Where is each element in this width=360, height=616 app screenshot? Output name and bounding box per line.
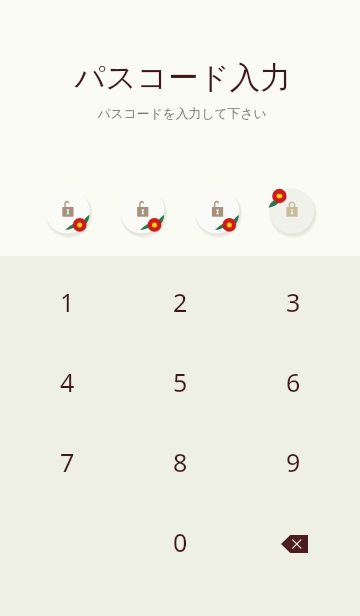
staticText: 6 bbox=[286, 365, 301, 399]
staticText: 1 bbox=[60, 285, 75, 319]
staticText: 5 bbox=[173, 365, 188, 399]
button[interactable]: 3 bbox=[237, 262, 350, 342]
staticText: 4 bbox=[60, 365, 75, 399]
staticText: 3 bbox=[286, 285, 301, 319]
staticText: 0 bbox=[173, 525, 188, 559]
button[interactable]: 9 bbox=[237, 422, 350, 502]
button[interactable]: 1 bbox=[10, 262, 124, 342]
staticText: 9 bbox=[286, 445, 301, 479]
staticText: パスコードを入力して下さい bbox=[97, 106, 267, 122]
staticText: 7 bbox=[60, 445, 75, 479]
staticText: 8 bbox=[173, 445, 188, 479]
button[interactable]: 8 bbox=[124, 422, 237, 502]
button[interactable]: 5 bbox=[124, 342, 237, 422]
staticText: パスコード入力 bbox=[74, 59, 291, 97]
staticText: 2 bbox=[173, 285, 188, 319]
button[interactable]: Delete bbox=[237, 502, 350, 582]
button[interactable]: 0 bbox=[124, 502, 237, 582]
button[interactable]: 6 bbox=[237, 342, 350, 422]
button[interactable]: 4 bbox=[10, 342, 124, 422]
button[interactable]: 7 bbox=[10, 422, 124, 502]
button[interactable]: 2 bbox=[124, 262, 237, 342]
